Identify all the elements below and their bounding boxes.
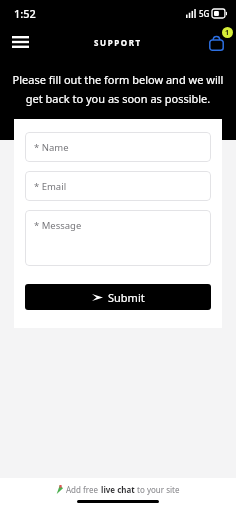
- button[interactable]: Cart: [200, 26, 232, 58]
- staticText: * Email: [34, 180, 67, 193]
- button[interactable]: * Name: [25, 132, 211, 162]
- staticText: Add free: [66, 484, 101, 495]
- staticText: * Message: [34, 219, 82, 232]
- staticText: to your site: [135, 484, 180, 495]
- staticText: 1:52: [14, 6, 36, 21]
- button[interactable]: * Message: [25, 210, 211, 266]
- button[interactable]: Add free: [0, 478, 236, 500]
- button[interactable]: * Email: [25, 171, 211, 201]
- staticText: * Name: [34, 141, 69, 154]
- button[interactable]: Submit: [25, 284, 211, 310]
- staticText: live chat: [101, 484, 135, 495]
- staticText: 1: [225, 28, 230, 38]
- staticText: SUPPORT: [94, 37, 142, 48]
- staticText: Please fill out the form below and we wi…: [10, 72, 226, 106]
- staticText: 5G: [199, 8, 210, 19]
- staticText: Submit: [108, 290, 145, 305]
- button[interactable]: Menu: [4, 26, 36, 58]
